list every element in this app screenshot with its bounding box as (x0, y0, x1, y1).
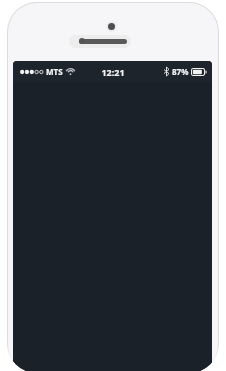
staticText: MTS (46, 66, 63, 77)
staticText: 87% (172, 66, 189, 77)
button[interactable]: Signal strength MTS, Wi-Fi connected (19, 66, 75, 77)
button[interactable]: Bluetooth on, battery 87 percent (164, 66, 207, 77)
staticText: 12:21 (101, 66, 125, 78)
